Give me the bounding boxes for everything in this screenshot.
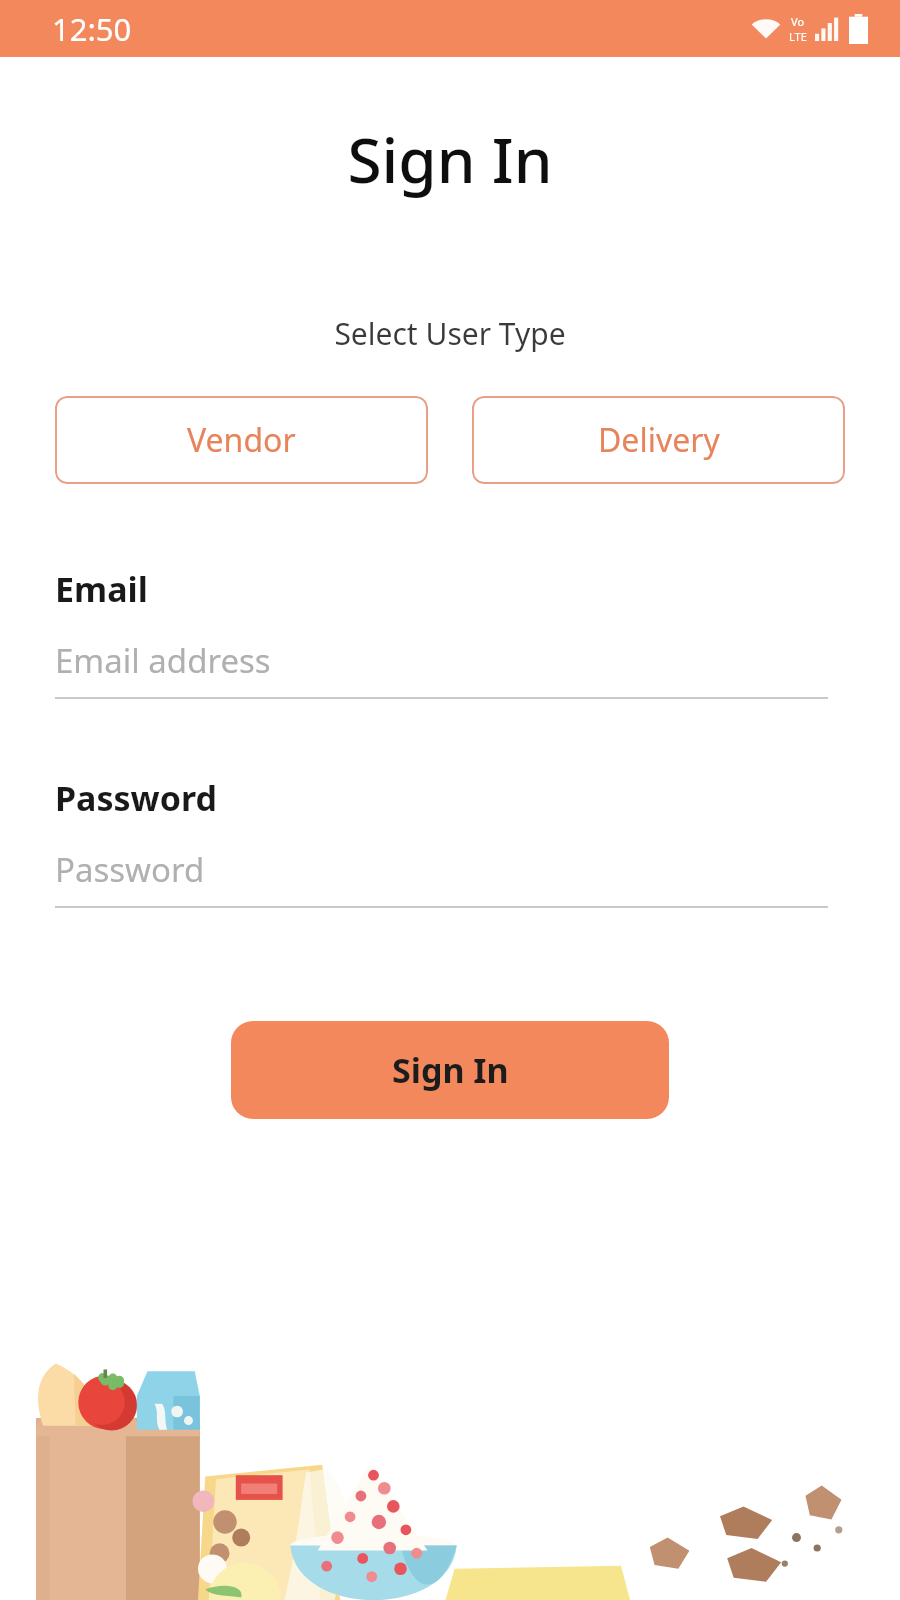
button[interactable]: Delivery xyxy=(472,396,845,484)
button[interactable]: Password xyxy=(55,775,828,908)
staticText: 12:50 xyxy=(52,8,132,50)
staticText: Sign In xyxy=(0,117,900,201)
staticText: Password xyxy=(55,775,217,821)
staticText: Sign In xyxy=(392,1047,509,1093)
staticText: Delivery xyxy=(598,418,720,462)
staticText: Password xyxy=(55,847,205,892)
button[interactable]: Sign In xyxy=(231,1021,669,1119)
other: Battery xyxy=(849,14,868,44)
button[interactable]: Vendor xyxy=(55,396,428,484)
other: Signal strength xyxy=(815,17,841,41)
staticText: Vo xyxy=(791,14,805,29)
staticText: Select User Type xyxy=(0,313,900,354)
other: Wi-Fi xyxy=(751,17,781,42)
staticText: Email address xyxy=(55,638,271,683)
staticText: LTE xyxy=(789,29,807,44)
staticText: Vendor xyxy=(187,418,296,462)
staticText: Email xyxy=(55,566,148,612)
button[interactable]: Email xyxy=(55,566,828,699)
